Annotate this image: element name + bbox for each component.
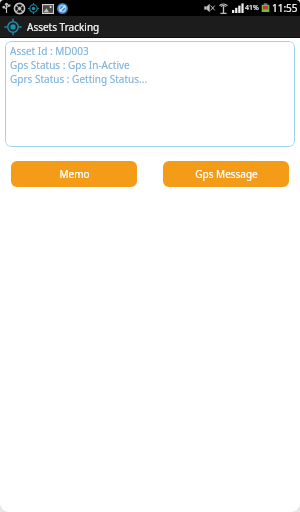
button[interactable]: App icon (0, 16, 300, 37)
button[interactable]: Memo (11, 161, 137, 187)
staticText: Gprs Status : Getting Status... (10, 72, 148, 86)
staticText: 41% (245, 3, 259, 13)
staticText: Gps Status : Gps In-Active (10, 58, 130, 72)
other: App icon (4, 18, 22, 36)
button[interactable]: Gps Message (163, 161, 289, 187)
staticText: 11:55 (272, 1, 298, 15)
button[interactable]: Asset Id : MD003 (5, 41, 295, 147)
staticText: Gps Message (195, 167, 258, 181)
staticText: Asset Id : MD003 (10, 44, 89, 58)
staticText: Memo (59, 167, 90, 181)
staticText: Assets Tracking (27, 20, 100, 34)
